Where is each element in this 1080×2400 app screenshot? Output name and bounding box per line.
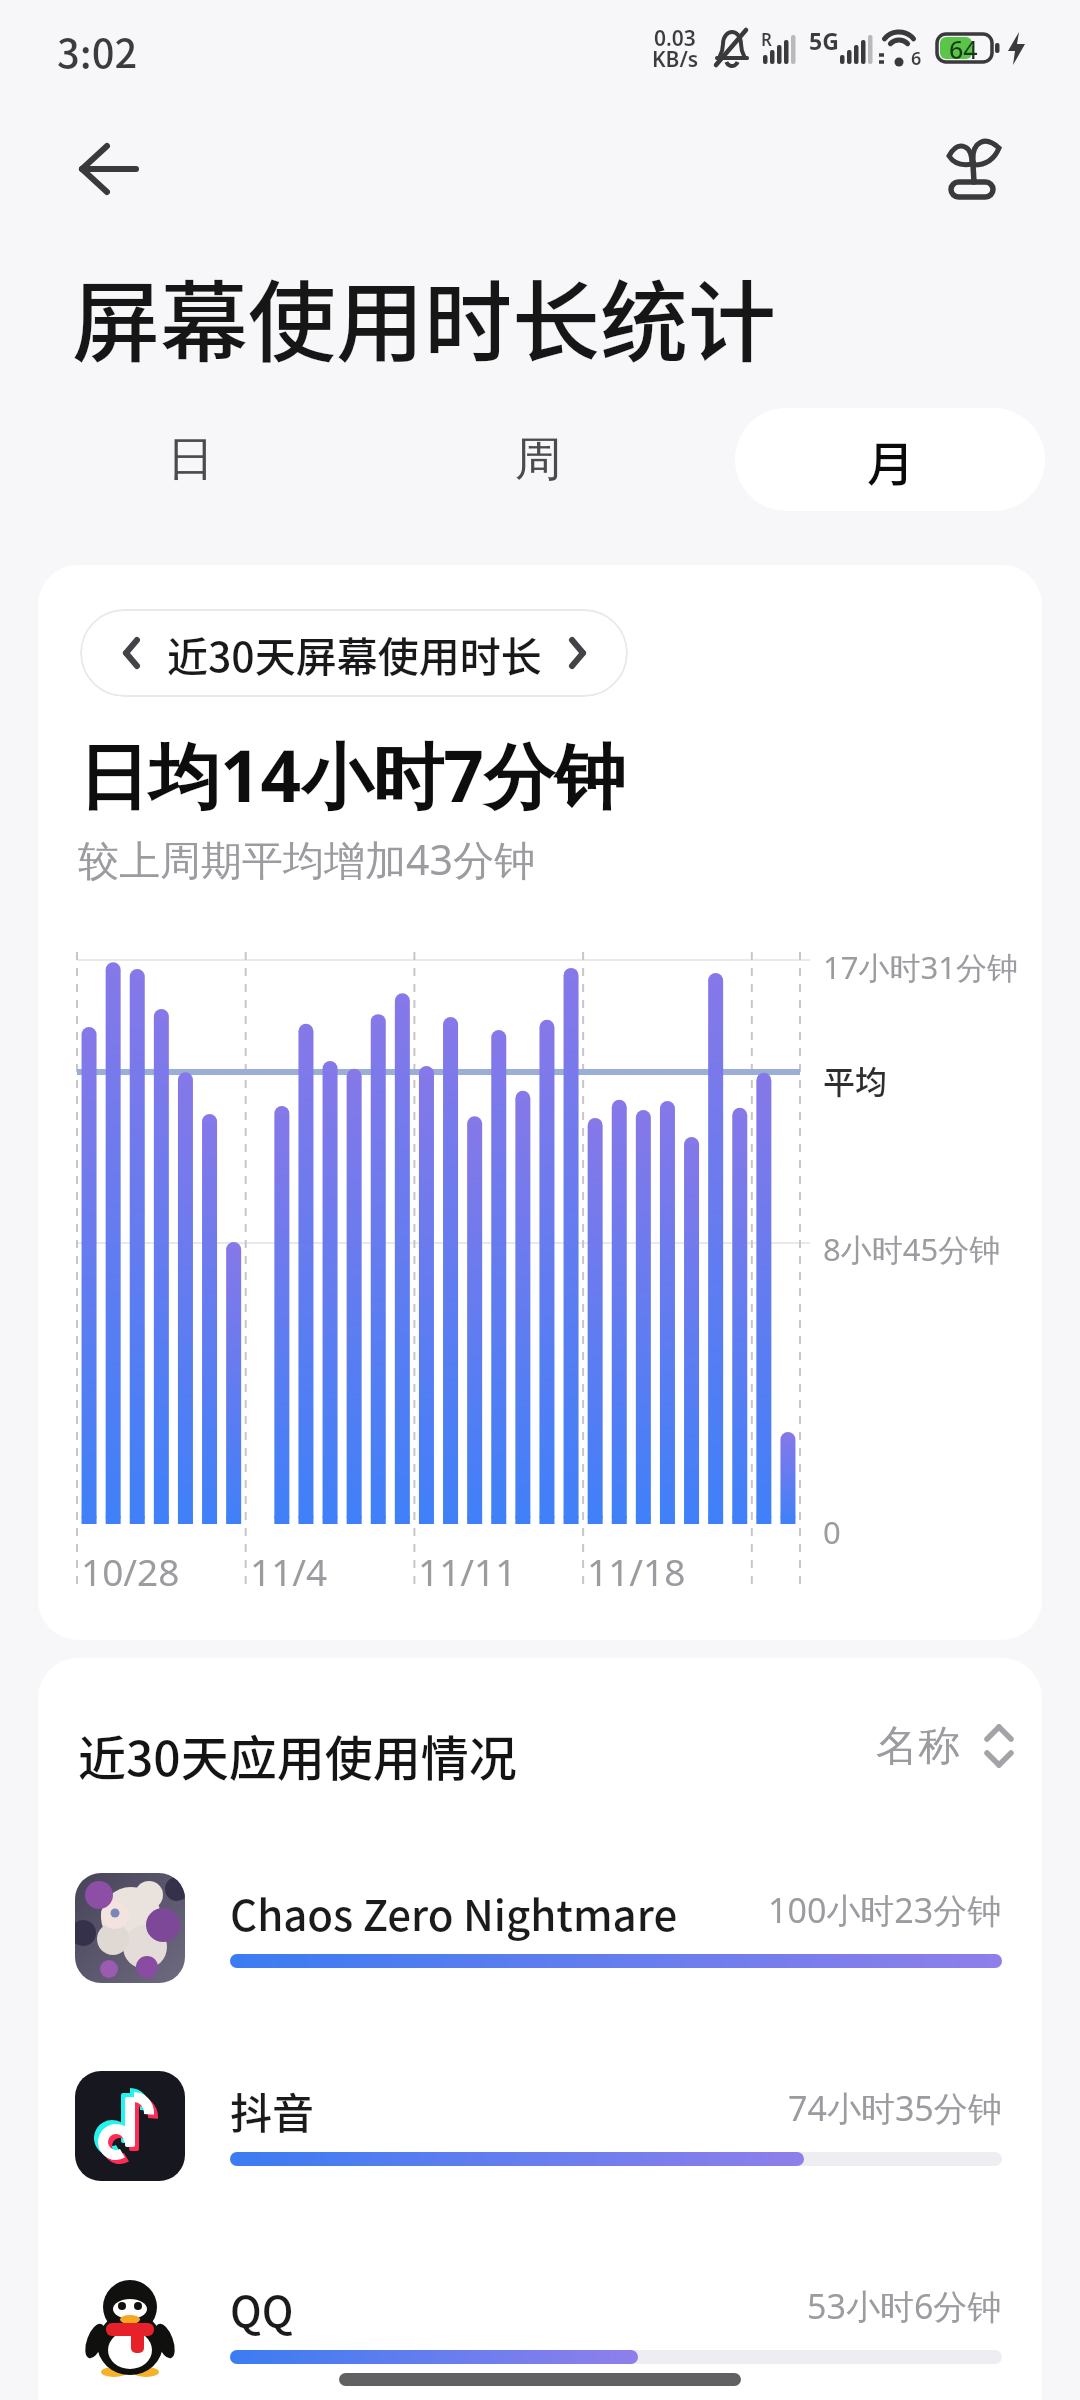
button[interactable]: [944, 139, 1004, 197]
staticText: 5G: [809, 25, 839, 56]
staticText: Chaos Zero Nightmare: [230, 1882, 678, 1943]
staticText: 较上周期平均增加43分钟: [78, 831, 535, 887]
button[interactable]: 月: [735, 408, 1045, 511]
staticText: 6: [911, 46, 922, 71]
button[interactable]: 近30天屏幕使用时长: [80, 609, 628, 697]
staticText: 近30天应用使用情况: [78, 1720, 517, 1790]
staticText: R: [761, 28, 772, 51]
staticText: 日: [167, 430, 214, 489]
button[interactable]: 周: [408, 408, 668, 511]
button[interactable]: 名称: [876, 1716, 1014, 1776]
button[interactable]: [76, 141, 142, 197]
staticText: 0.03: [654, 24, 696, 53]
button[interactable]: [75, 2269, 1002, 2379]
staticText: 11/11: [418, 1546, 517, 1596]
button[interactable]: [75, 1873, 1002, 1983]
staticText: 8小时45分钟: [823, 1228, 1001, 1270]
staticText: 11/4: [250, 1546, 328, 1596]
staticText: 近30天屏幕使用时长: [167, 624, 542, 683]
staticText: QQ: [230, 2278, 294, 2339]
staticText: 17小时31分钟: [823, 946, 1018, 988]
staticText: 10/28: [81, 1546, 180, 1596]
staticText: 日均14小时7分钟: [78, 726, 626, 823]
staticText: 平均: [823, 1057, 888, 1103]
staticText: 3:02: [57, 22, 138, 80]
staticText: 月: [867, 426, 914, 494]
staticText: 11/18: [587, 1546, 686, 1596]
button[interactable]: 日: [60, 408, 320, 511]
button[interactable]: [75, 2071, 1002, 2181]
staticText: 100小时23分钟: [768, 1887, 1002, 1933]
staticText: 0: [823, 1511, 841, 1553]
staticText: 周: [515, 430, 562, 489]
staticText: 53小时6分钟: [807, 2283, 1002, 2329]
staticText: 64: [949, 32, 978, 66]
staticText: 屏幕使用时长统计: [72, 252, 777, 379]
staticText: KB/s: [652, 45, 699, 74]
staticText: 74小时35分钟: [788, 2085, 1002, 2131]
staticText: 抖音: [230, 2080, 315, 2141]
staticText: 名称: [876, 1720, 960, 1773]
